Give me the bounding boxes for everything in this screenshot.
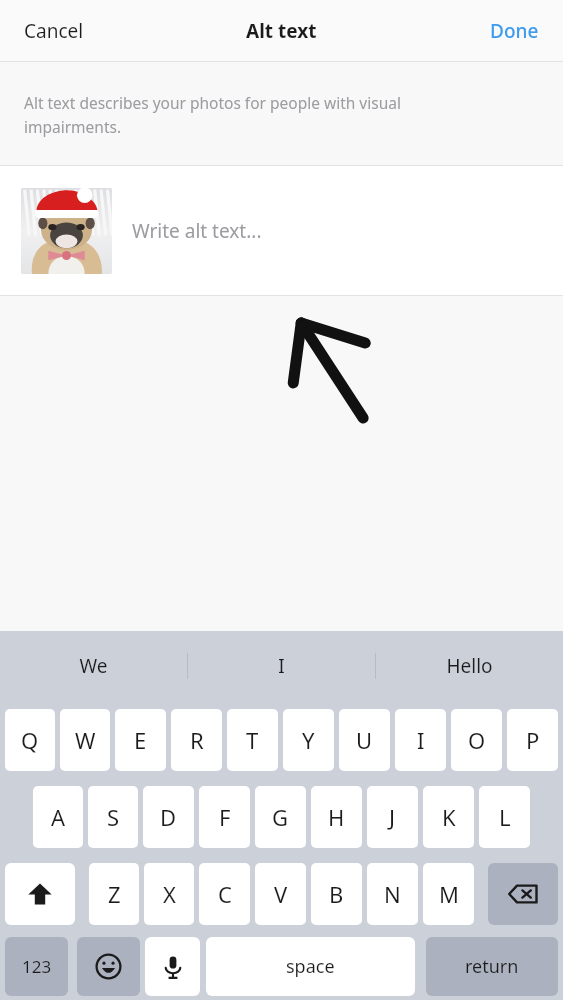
button[interactable]: I <box>188 631 375 701</box>
button[interactable]: Q <box>5 709 55 771</box>
button[interactable]: N <box>367 863 418 925</box>
button[interactable]: C <box>199 863 250 925</box>
button[interactable]: P <box>507 709 558 771</box>
button[interactable]: E <box>115 709 166 771</box>
button[interactable]: X <box>144 863 194 925</box>
staticText: P <box>526 725 540 755</box>
staticText: A <box>51 802 66 832</box>
button[interactable]: J <box>367 786 418 848</box>
button[interactable]: 123 <box>5 937 68 996</box>
staticText: J <box>389 802 396 832</box>
staticText: return <box>465 954 519 979</box>
button[interactable]: space <box>206 937 415 996</box>
button[interactable]: V <box>255 863 306 925</box>
button[interactable]: Dictate <box>145 937 200 996</box>
button[interactable]: G <box>255 786 306 848</box>
staticText: Alt text describes your photos for peopl… <box>24 92 468 137</box>
staticText: Done <box>490 18 539 44</box>
staticText: N <box>384 879 401 909</box>
button[interactable]: Backspace <box>488 863 558 925</box>
staticText: D <box>160 802 177 832</box>
staticText: Q <box>21 725 39 755</box>
button[interactable]: K <box>423 786 474 848</box>
staticText: X <box>163 879 176 909</box>
staticText: L <box>499 802 511 832</box>
staticText: 123 <box>22 955 52 978</box>
button[interactable]: F <box>199 786 250 848</box>
button[interactable]: O <box>451 709 502 771</box>
button[interactable]: Done <box>470 0 563 61</box>
staticText: G <box>272 802 289 832</box>
button[interactable]: A <box>33 786 83 848</box>
button[interactable]: U <box>339 709 390 771</box>
button[interactable]: Emoji <box>77 937 140 996</box>
staticText: I <box>417 725 425 755</box>
button[interactable]: R <box>171 709 222 771</box>
button[interactable]: Shift <box>5 863 75 925</box>
staticText: F <box>219 802 231 832</box>
staticText: V <box>274 879 288 909</box>
staticText: E <box>134 725 147 755</box>
button[interactable]: Write alt text... <box>0 166 563 295</box>
staticText: We <box>79 653 108 679</box>
button[interactable]: M <box>423 863 474 925</box>
button[interactable]: T <box>227 709 278 771</box>
staticText: space <box>286 954 335 979</box>
staticText: Hello <box>446 653 493 679</box>
button[interactable]: S <box>88 786 138 848</box>
button[interactable]: H <box>311 786 362 848</box>
staticText: M <box>439 879 459 909</box>
button[interactable]: L <box>479 786 530 848</box>
staticText: K <box>442 802 456 832</box>
staticText: T <box>246 725 259 755</box>
staticText: W <box>75 725 96 755</box>
staticText: Write alt text... <box>132 218 262 244</box>
button[interactable]: Y <box>283 709 334 771</box>
button[interactable]: Hello <box>376 631 563 701</box>
staticText: Y <box>302 725 315 755</box>
button[interactable]: Z <box>89 863 139 925</box>
button[interactable]: I <box>395 709 446 771</box>
button[interactable]: return <box>426 937 558 996</box>
staticText: C <box>218 879 232 909</box>
staticText: S <box>107 802 120 832</box>
staticText: O <box>468 725 486 755</box>
button[interactable]: D <box>143 786 194 848</box>
button[interactable]: We <box>0 631 187 701</box>
button[interactable]: B <box>311 863 362 925</box>
staticText: U <box>356 725 373 755</box>
staticText: Alt text <box>246 18 317 44</box>
button[interactable]: Cancel <box>0 0 104 61</box>
staticText: R <box>190 725 204 755</box>
staticText: B <box>329 879 344 909</box>
staticText: Z <box>108 879 121 909</box>
staticText: H <box>328 802 345 832</box>
staticText: Cancel <box>24 18 84 44</box>
staticText: I <box>278 653 285 679</box>
button[interactable]: W <box>60 709 110 771</box>
